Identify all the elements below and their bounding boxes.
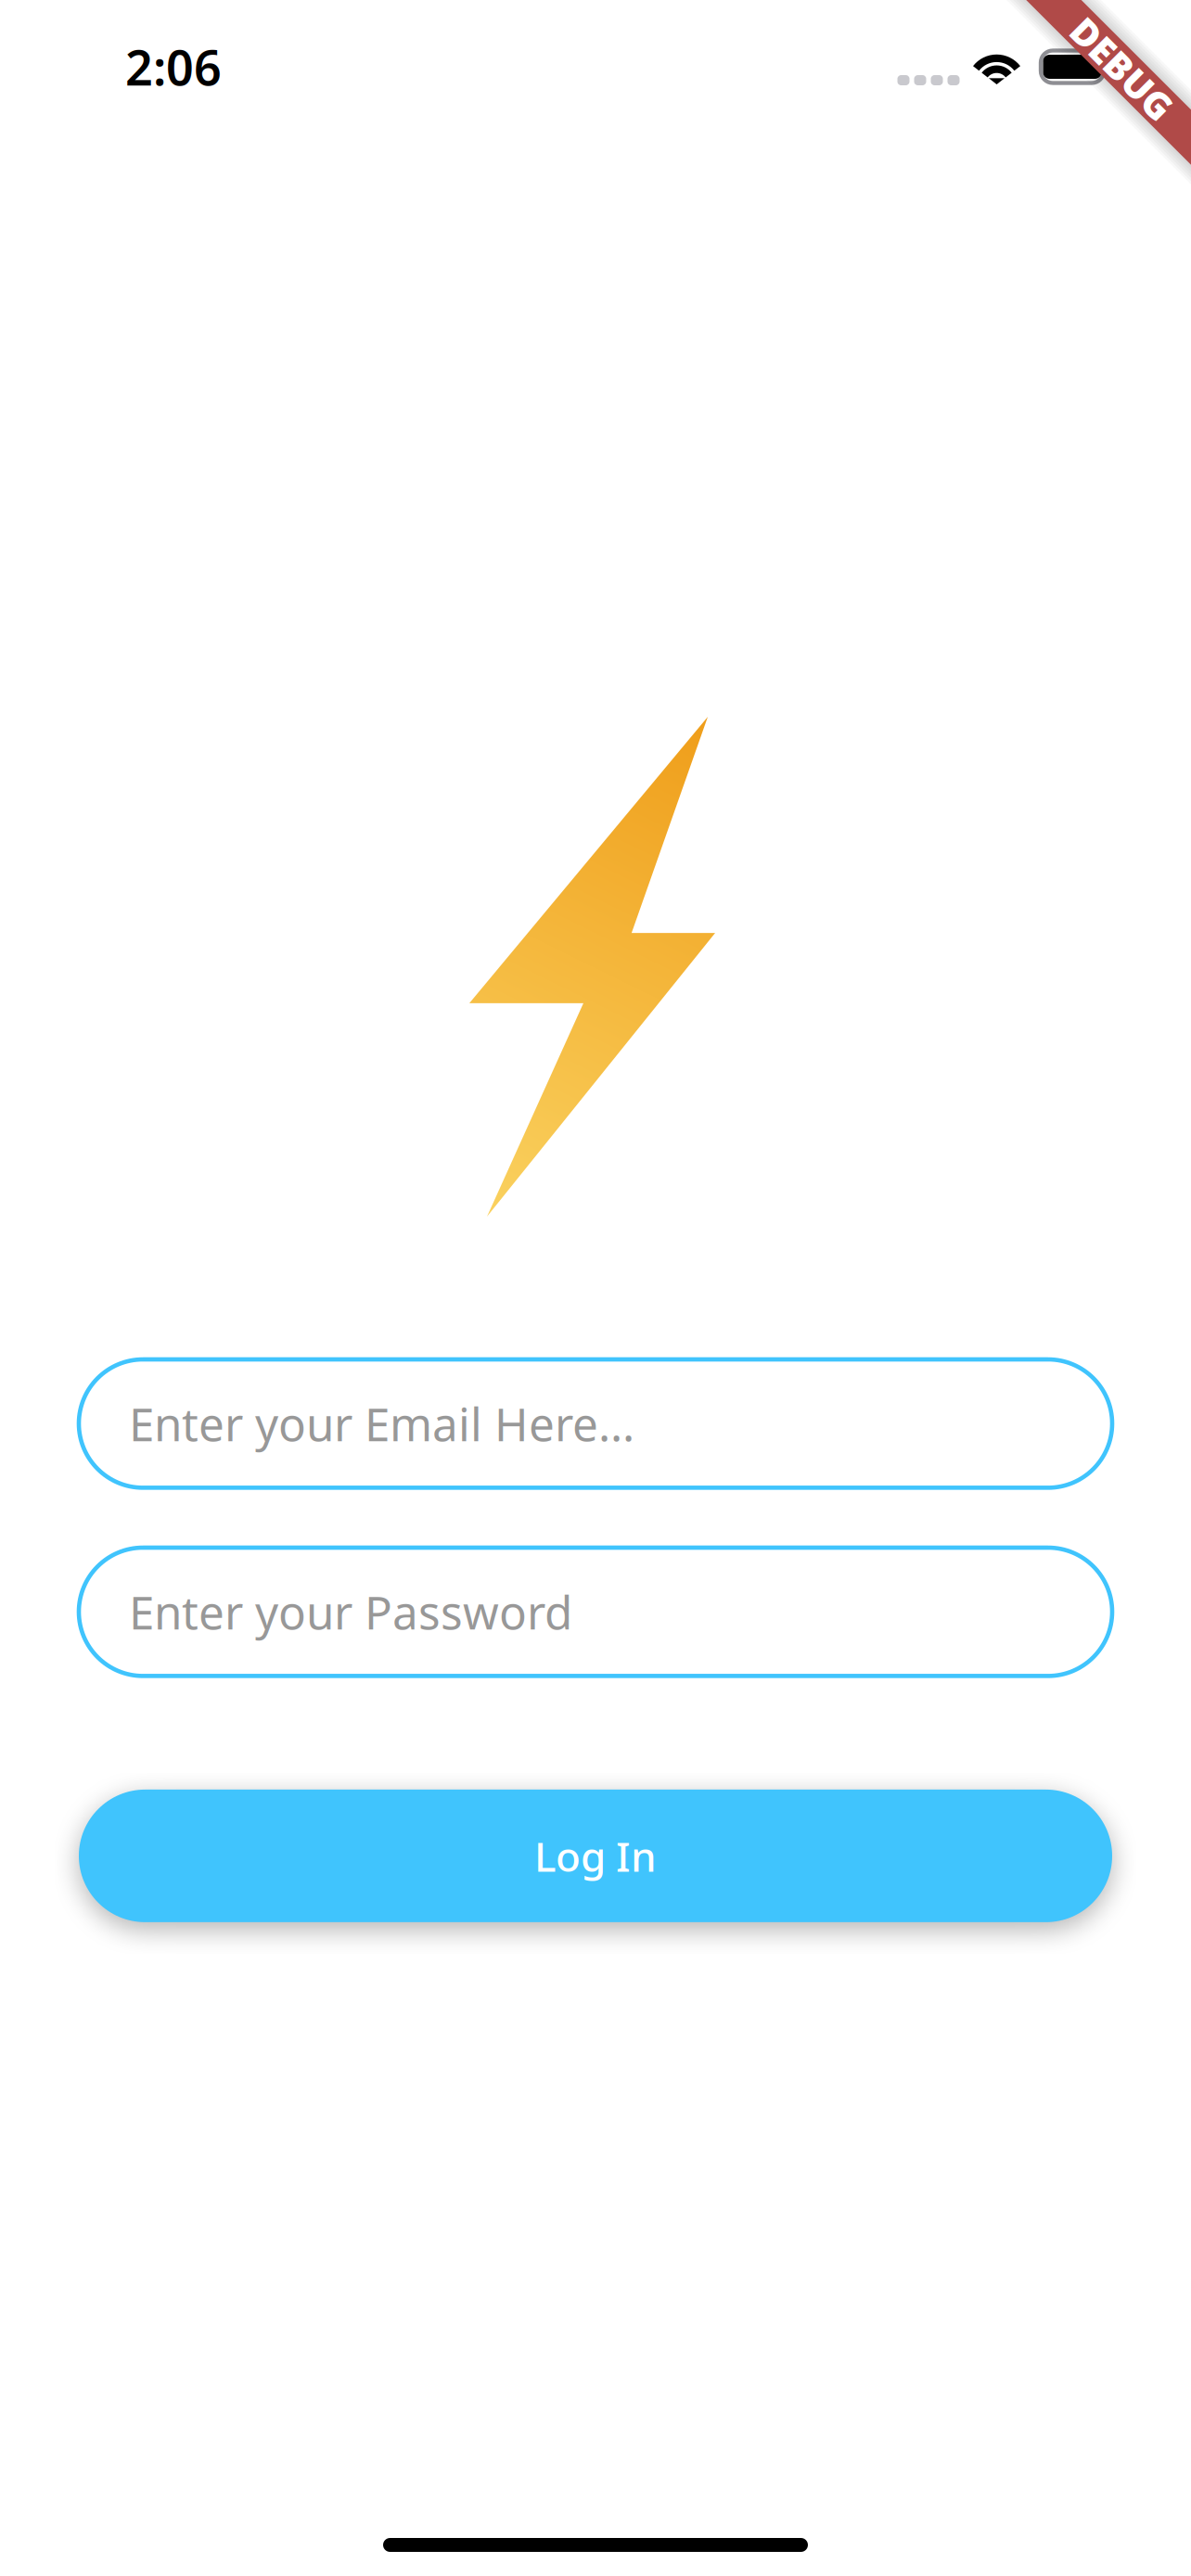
staticText: Enter your Email Here...: [129, 1393, 634, 1454]
button[interactable]: Log In: [79, 1790, 1112, 1922]
staticText: Enter your Password: [129, 1581, 572, 1642]
button[interactable]: Enter your Password: [79, 1548, 1112, 1676]
staticText: Log In: [534, 1829, 657, 1883]
staticText: DEBUG: [1058, 44, 1186, 93]
button[interactable]: Enter your Email Here...: [79, 1359, 1112, 1488]
staticText: 2:06: [125, 35, 222, 99]
